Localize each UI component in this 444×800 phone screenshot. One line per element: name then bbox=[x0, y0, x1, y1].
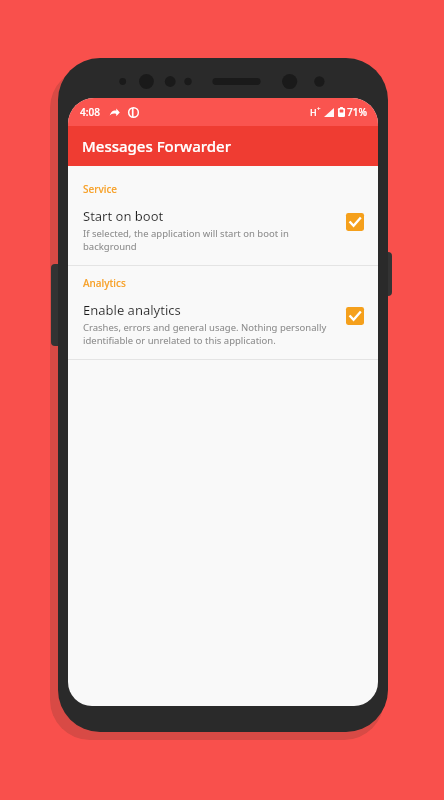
staticText: 4:08 bbox=[80, 105, 100, 119]
staticText: Enable analytics bbox=[83, 301, 181, 319]
staticText: Crashes, errors and general usage. Nothi… bbox=[83, 321, 334, 347]
button[interactable]: Start on boot bbox=[68, 199, 378, 265]
button[interactable]: Toggle Start on boot bbox=[346, 213, 364, 231]
staticText: Start on boot bbox=[83, 207, 164, 225]
staticText: 71% bbox=[347, 105, 367, 119]
staticText: + bbox=[317, 105, 321, 113]
staticText: Service bbox=[83, 182, 118, 196]
staticText: Analytics bbox=[83, 276, 126, 290]
staticText: If selected, the application will start … bbox=[83, 227, 334, 253]
staticText: Messages Forwarder bbox=[82, 136, 232, 156]
button[interactable]: Toggle Enable analytics bbox=[346, 307, 364, 325]
button[interactable]: Enable analytics bbox=[68, 293, 378, 359]
staticText: H bbox=[310, 106, 317, 118]
